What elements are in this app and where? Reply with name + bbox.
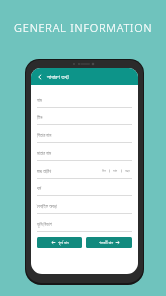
button[interactable]: Back <box>35 72 44 81</box>
button[interactable]: দিন <box>99 169 108 173</box>
staticText: বৈবাহিক অবস্থা <box>37 203 57 209</box>
staticText: মাতার নাম <box>37 150 52 156</box>
button[interactable]: বৈবাহিক অবস্থা <box>37 196 132 214</box>
button[interactable]: পূর্বে যান <box>37 237 82 248</box>
staticText: দিন <box>102 169 106 173</box>
button[interactable]: মাতার নাম <box>37 143 132 161</box>
staticText: বছর <box>125 169 130 173</box>
staticText: ভূমি বিভাগ <box>37 221 52 227</box>
button[interactable]: নাম <box>37 91 132 108</box>
staticText: ধর্ম <box>37 186 41 191</box>
button[interactable]: ভূমি বিভাগ <box>37 214 132 232</box>
button[interactable]: মাস <box>111 169 120 173</box>
staticText: মাস <box>113 169 118 173</box>
button[interactable]: Back <box>31 68 138 85</box>
staticText: সাধারণ তথ্য <box>47 73 69 81</box>
button[interactable]: পরবর্তী যান <box>86 237 132 248</box>
staticText: পূর্বে যান <box>58 240 69 246</box>
staticText: GENERAL INFORMATION <box>14 20 153 35</box>
button[interactable]: জন্ম তারিখ <box>37 161 132 179</box>
staticText: লিঙ্গ <box>37 115 43 120</box>
staticText: জন্ম তারিখ <box>37 168 52 174</box>
button[interactable]: বছর <box>123 169 132 173</box>
button[interactable]: লিঙ্গ <box>37 108 132 125</box>
button[interactable]: ধর্ম <box>37 179 132 196</box>
staticText: নাম <box>37 98 42 103</box>
button[interactable]: পিতার নাম <box>37 125 132 143</box>
staticText: পিতার নাম <box>37 132 52 138</box>
staticText: পরবর্তী যান <box>99 240 113 246</box>
